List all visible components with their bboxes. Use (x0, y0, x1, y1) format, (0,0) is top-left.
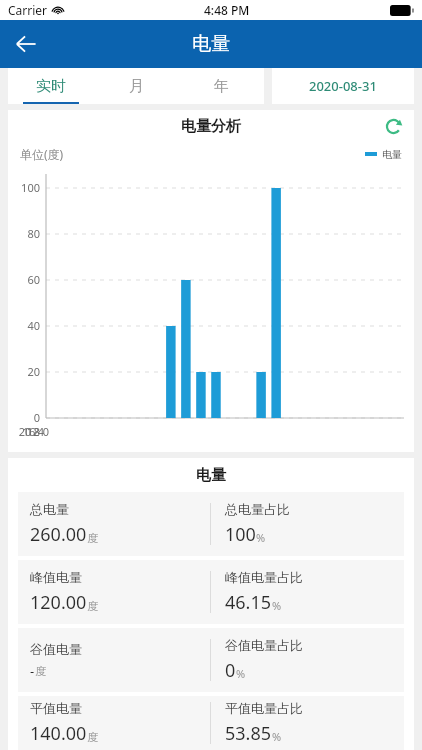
staticText: 月 (129, 77, 144, 96)
staticText: 电量 (192, 32, 230, 56)
staticText: 总电量占比 (225, 501, 290, 517)
staticText: 电量 (382, 148, 402, 161)
staticText: 电量分析 (181, 117, 241, 136)
staticText: 单位(度) (20, 146, 64, 162)
staticText: 60 (10, 272, 40, 287)
staticText: 100 (225, 522, 256, 547)
button[interactable]: Back (4, 22, 48, 66)
staticText: 53.85 (225, 721, 272, 746)
staticText: 16 (17, 424, 41, 439)
staticText: 140.00 (30, 721, 87, 746)
staticText: 46.15 (225, 590, 272, 615)
staticText: 电量 (196, 466, 226, 485)
staticText: 4:48 PM (204, 2, 250, 18)
staticText: 实时 (36, 77, 66, 96)
staticText: 120.00 (30, 590, 87, 615)
button[interactable]: 谷值电量 (18, 628, 404, 692)
button[interactable]: 峰值电量 (18, 560, 404, 624)
staticText: 度 (87, 599, 98, 613)
staticText: 峰值电量 (30, 569, 82, 585)
staticText: 总电量 (30, 501, 69, 517)
staticText: - (30, 662, 35, 680)
staticText: 峰值电量占比 (225, 569, 303, 585)
staticText: % (256, 530, 266, 545)
button[interactable]: 月 (94, 68, 179, 104)
staticText: 20 (10, 364, 40, 379)
staticText: 度 (87, 531, 98, 545)
staticText: 40 (10, 318, 40, 333)
staticText: 谷值电量 (30, 641, 82, 657)
button[interactable]: 总电量 (18, 492, 404, 556)
staticText: 平值电量 (30, 700, 82, 716)
button[interactable]: 2020-08-31 (272, 68, 414, 104)
staticText: 谷值电量占比 (225, 637, 303, 653)
staticText: 12 (21, 424, 45, 439)
staticText: 20 (13, 424, 37, 439)
staticText: 2020-08-31 (309, 77, 377, 95)
staticText: % (236, 666, 246, 681)
staticText: Carrier (8, 2, 48, 18)
staticText: 度 (35, 664, 46, 678)
staticText: 年 (214, 77, 229, 96)
staticText: 0 (34, 424, 58, 439)
button[interactable]: 实时 (8, 68, 94, 104)
staticText: 100 (10, 180, 40, 195)
staticText: 80 (10, 226, 40, 241)
staticText: 度 (87, 730, 98, 744)
staticText: 0 (225, 658, 236, 683)
staticText: 0 (10, 410, 40, 425)
button[interactable]: Refresh (380, 113, 406, 139)
staticText: 8 (25, 424, 49, 439)
button[interactable]: 年 (179, 68, 264, 104)
staticText: 平值电量占比 (225, 700, 303, 716)
staticText: % (272, 729, 282, 744)
button[interactable]: 平值电量 (18, 696, 404, 750)
staticText: % (272, 598, 282, 613)
staticText: 260.00 (30, 522, 87, 547)
staticText: 4 (29, 424, 53, 439)
